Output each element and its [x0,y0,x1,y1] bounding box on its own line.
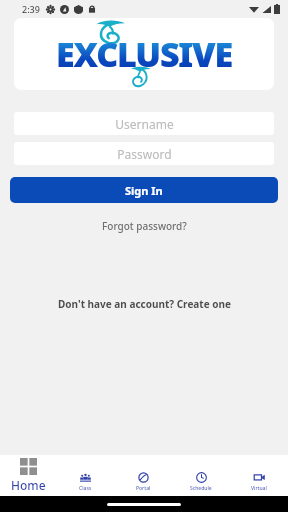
staticText: Don't have an account? Create one [58,297,231,311]
staticText: Password [117,146,172,162]
staticText: 2:39 [22,3,40,15]
staticText: Schedule [190,485,212,492]
staticText: Virtual [251,485,267,492]
button[interactable]: Sign In [10,177,278,203]
staticText: Sign In [125,183,163,198]
staticText: EXCLUSIVE [56,31,232,77]
button[interactable]: Class [57,455,114,496]
button[interactable]: Forgot password? [0,216,288,236]
button[interactable]: Schedule [172,455,230,496]
button[interactable]: Home [0,455,57,496]
button[interactable]: Password [14,142,274,165]
staticText: Portal [136,485,151,492]
button[interactable]: Don't have an account? Create one [0,294,288,314]
staticText: Username [115,116,174,132]
staticText: Forgot password? [102,219,187,233]
staticText: Class [79,485,92,492]
button[interactable]: Username [14,112,274,135]
button[interactable]: Portal [114,455,172,496]
staticText: Home [11,477,46,493]
button[interactable]: Virtual [230,455,288,496]
